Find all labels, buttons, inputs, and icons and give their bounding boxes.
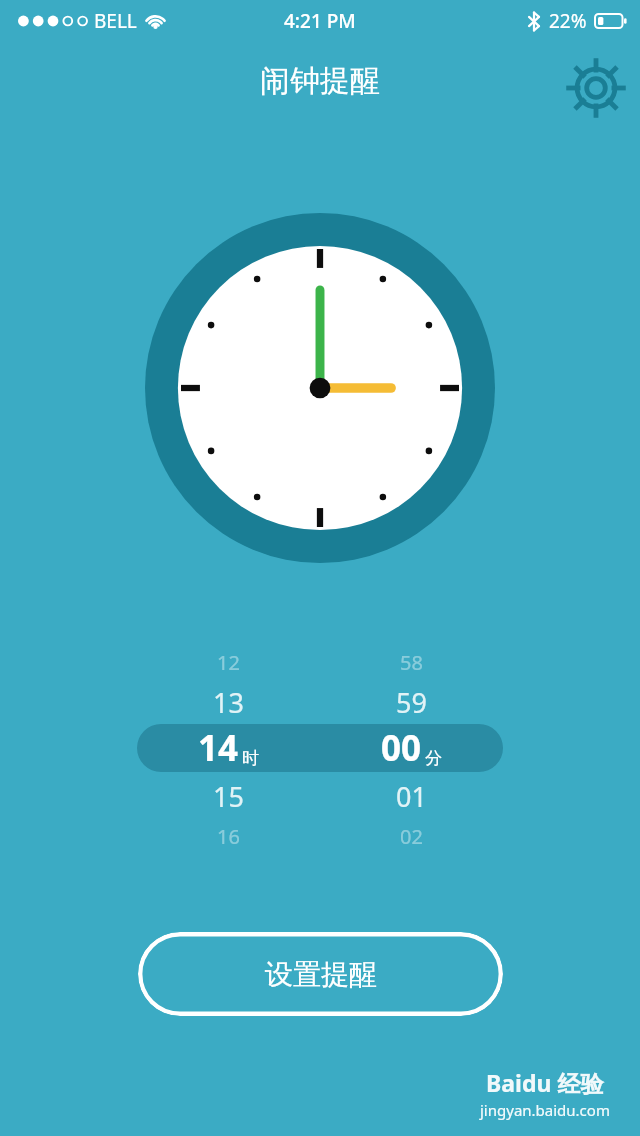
- button[interactable]: 12: [137, 644, 503, 680]
- button[interactable]: 14: [137, 723, 503, 773]
- button[interactable]: Settings: [565, 57, 627, 119]
- staticText: 分: [425, 748, 442, 769]
- staticText: 设置提醒: [265, 957, 377, 992]
- staticText: BELL: [94, 8, 137, 34]
- button[interactable]: 设置提醒: [138, 932, 503, 1016]
- staticText: 12: [217, 649, 240, 676]
- button[interactable]: 16: [137, 818, 503, 854]
- staticText: 00: [381, 724, 422, 772]
- staticText: 13: [213, 684, 244, 721]
- staticText: 58: [400, 649, 423, 676]
- staticText: Baidu 经验: [486, 1067, 604, 1098]
- staticText: 15: [213, 778, 244, 815]
- staticText: jingyan.baidu.com: [480, 1100, 610, 1120]
- button[interactable]: 13: [137, 681, 503, 723]
- button[interactable]: 15: [137, 775, 503, 817]
- staticText: 59: [396, 684, 427, 721]
- staticText: 时: [242, 748, 259, 769]
- staticText: 16: [217, 823, 240, 850]
- staticText: 闹钟提醒: [260, 62, 380, 100]
- staticText: 22%: [549, 8, 587, 34]
- staticText: 01: [396, 778, 427, 815]
- staticText: 02: [400, 823, 423, 850]
- staticText: 4:21 PM: [284, 8, 356, 34]
- staticText: 14: [198, 724, 239, 772]
